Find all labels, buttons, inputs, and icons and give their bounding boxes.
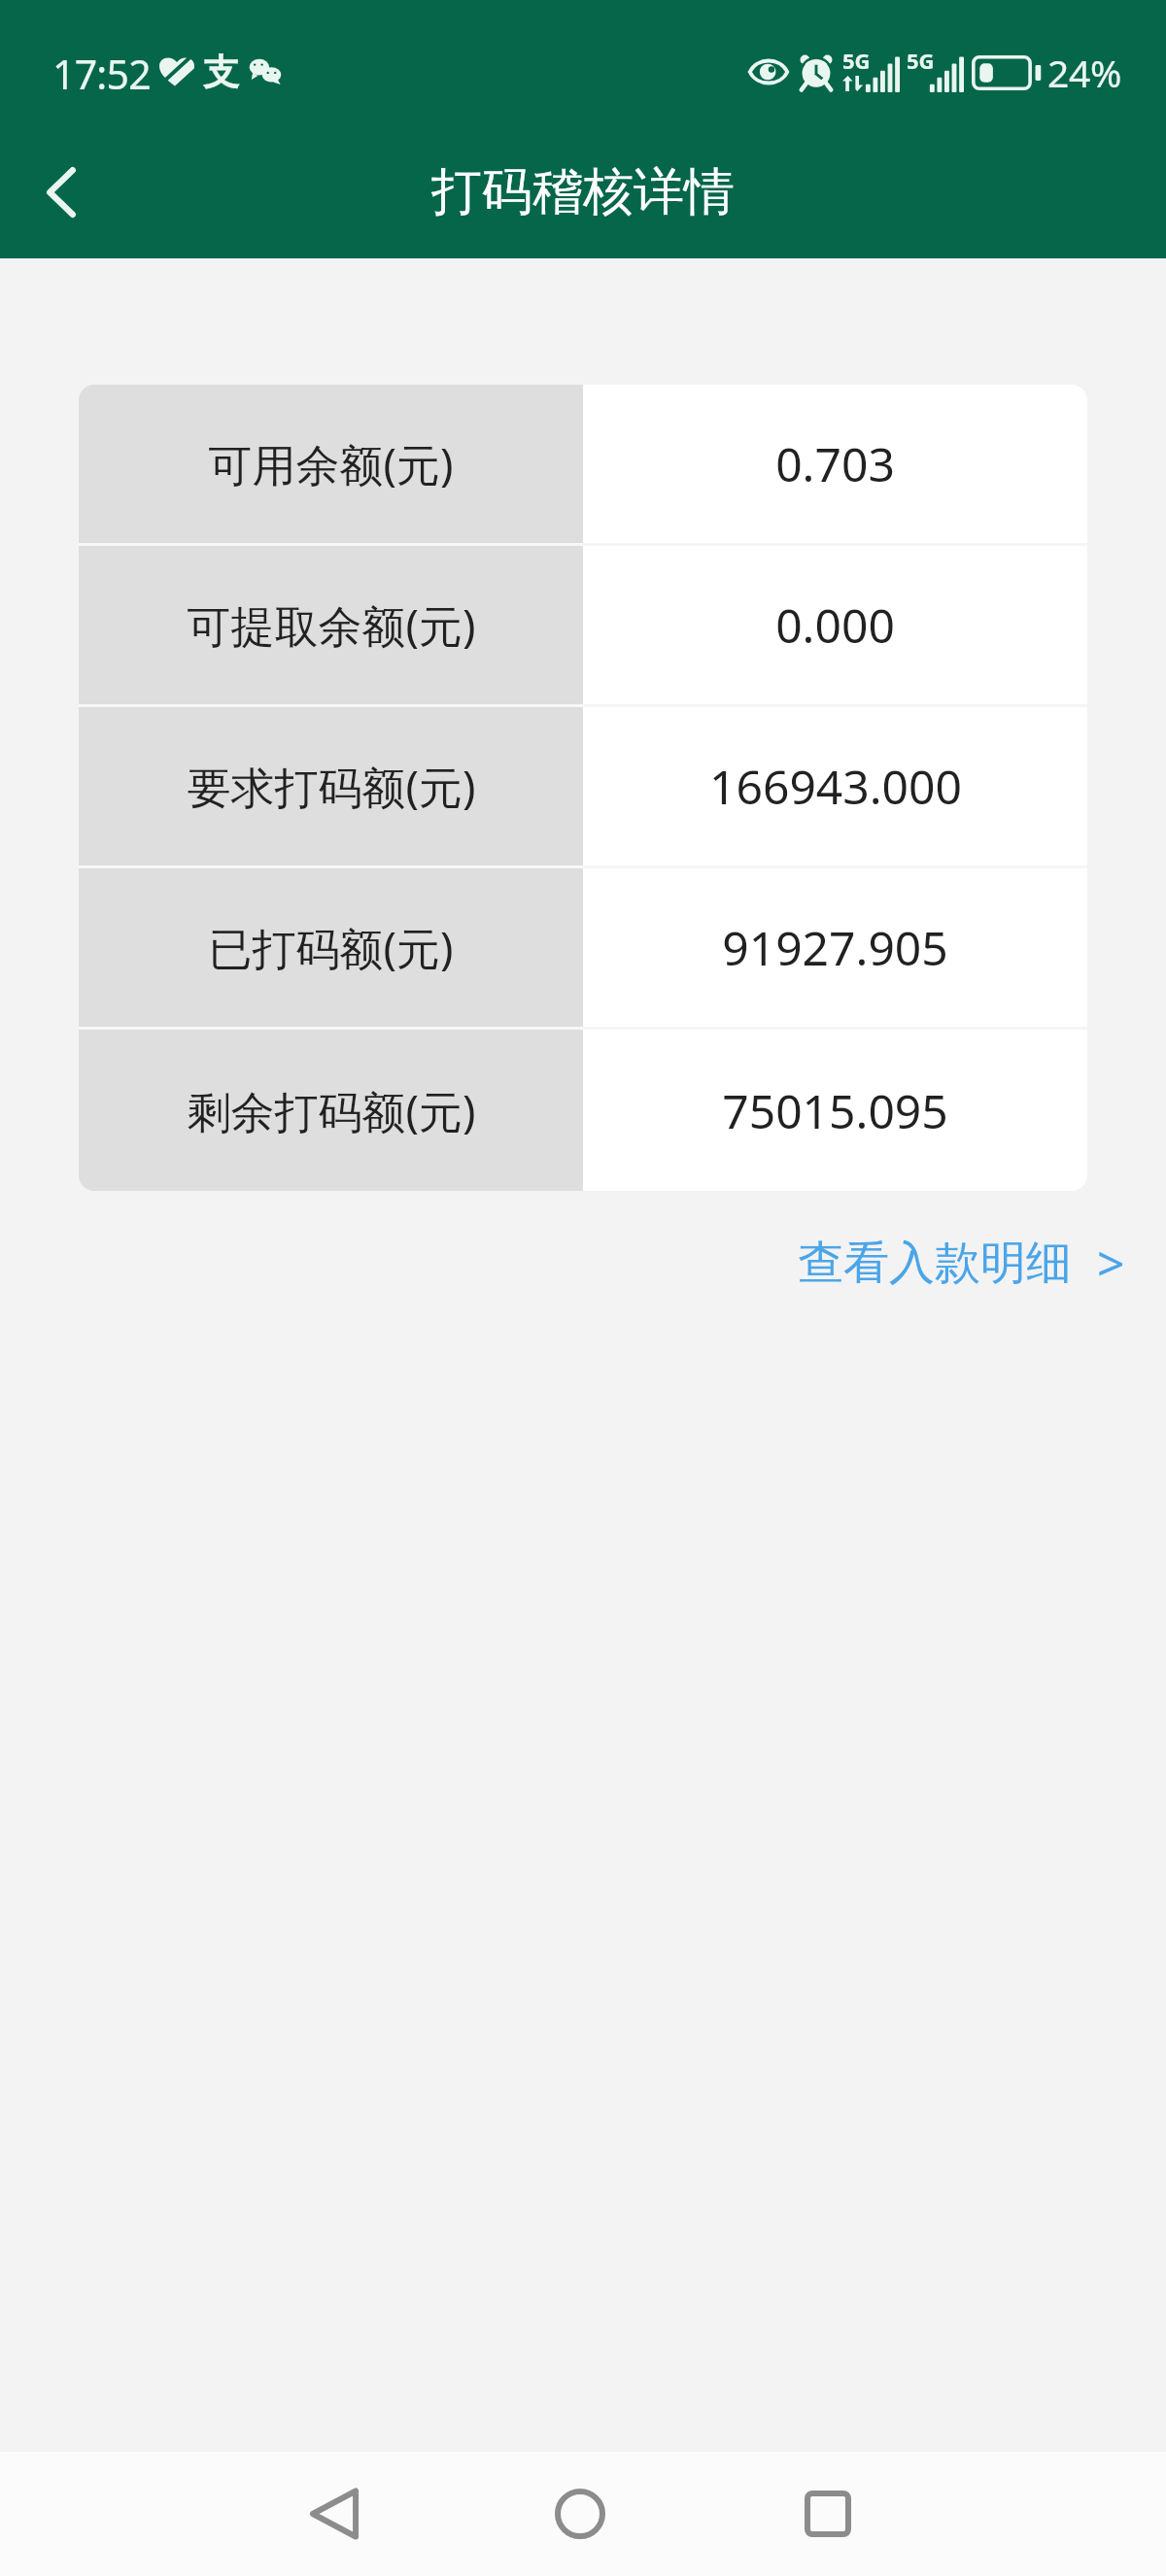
staticText: 可提取余额(元) bbox=[187, 595, 476, 655]
staticText: > bbox=[1097, 1230, 1125, 1296]
button[interactable]: Recent apps bbox=[770, 2452, 886, 2576]
staticText: 查看入款明细 bbox=[798, 1235, 1072, 1292]
staticText: 0.703 bbox=[775, 432, 895, 495]
staticText: 可用余额(元) bbox=[208, 434, 454, 493]
staticText: 剩余打码额(元) bbox=[187, 1081, 476, 1140]
button[interactable]: 查看入款明细 bbox=[769, 1216, 1166, 1309]
staticText: 24% bbox=[1047, 47, 1122, 98]
staticText: 5G bbox=[907, 46, 935, 75]
staticText: 17:52 bbox=[52, 47, 151, 101]
staticText: 75015.095 bbox=[722, 1079, 948, 1142]
staticText: 打码稽核详情 bbox=[431, 160, 735, 224]
button[interactable]: Home bbox=[522, 2452, 638, 2576]
staticText: 要求打码额(元) bbox=[187, 757, 476, 816]
staticText: 支 bbox=[203, 50, 239, 95]
staticText: 0.000 bbox=[775, 593, 895, 657]
staticText: 5G bbox=[842, 46, 871, 75]
staticText: 已打码额(元) bbox=[208, 918, 454, 977]
button[interactable]: Back bbox=[276, 2452, 393, 2576]
button[interactable]: Back bbox=[0, 126, 124, 258]
staticText: 166943.000 bbox=[709, 755, 962, 818]
staticText: 91927.905 bbox=[722, 916, 948, 979]
